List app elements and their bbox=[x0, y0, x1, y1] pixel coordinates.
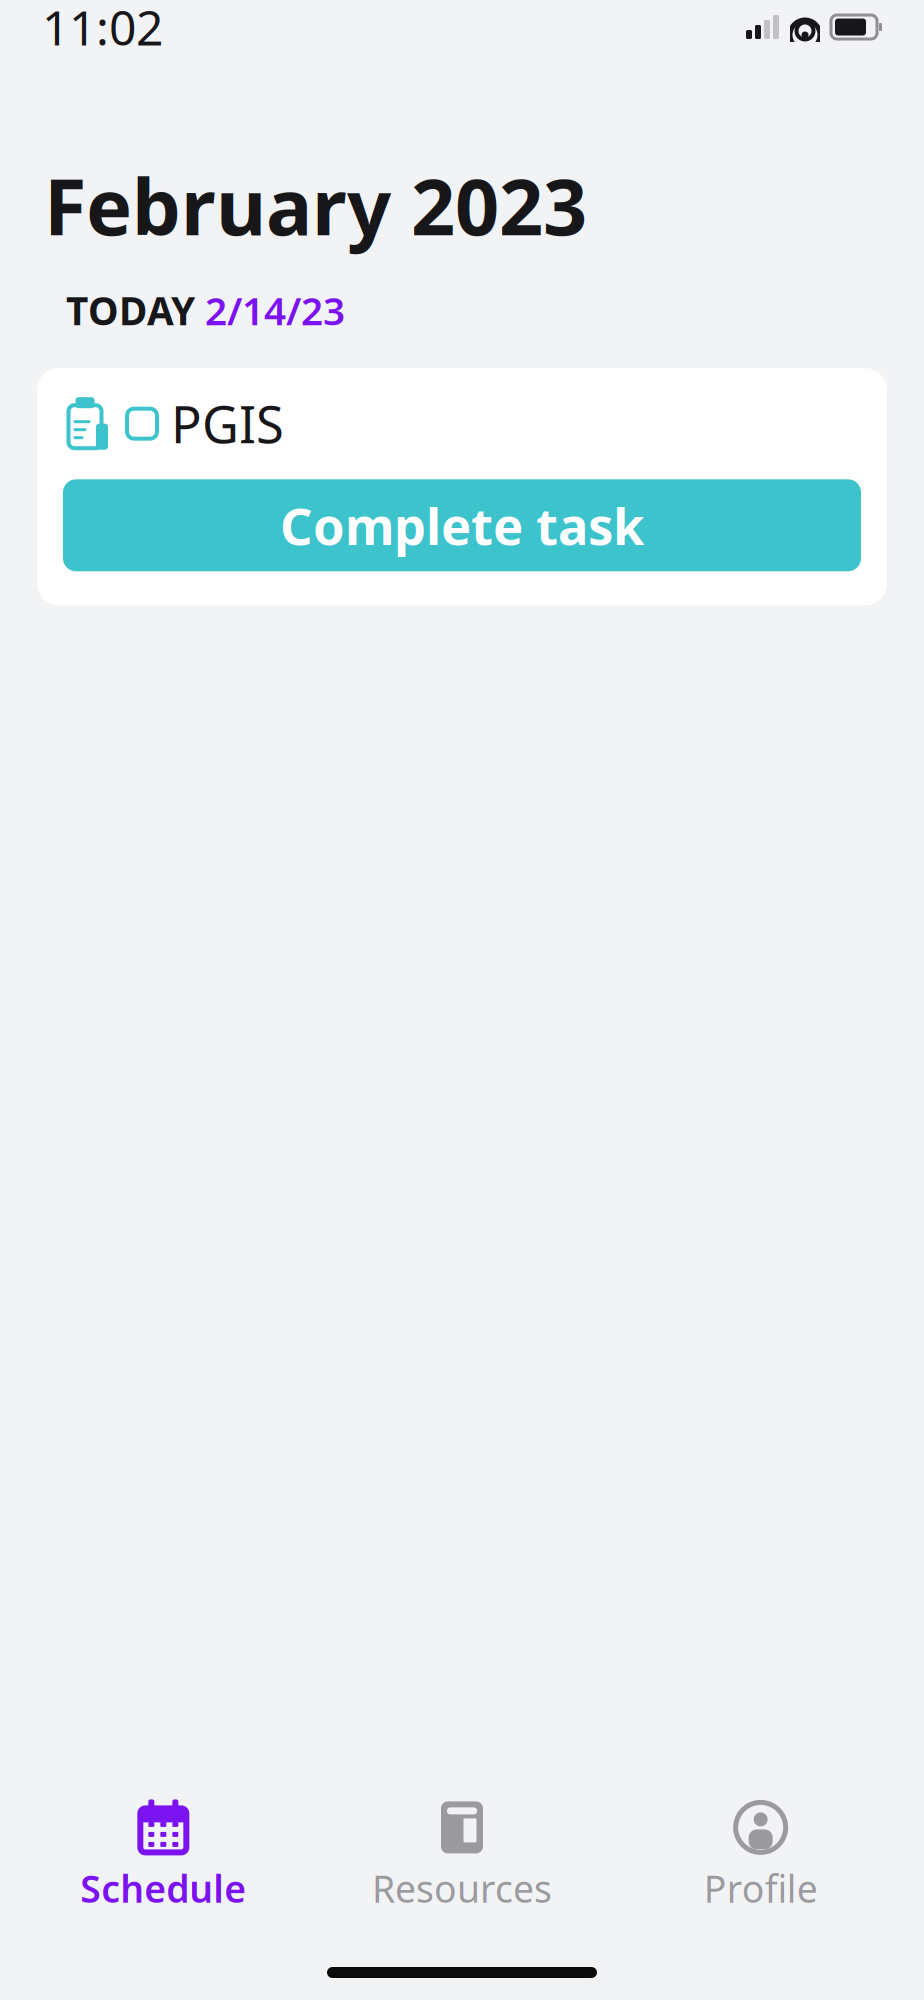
button[interactable]: Schedule bbox=[14, 1793, 313, 1919]
staticText: PGIS bbox=[171, 390, 284, 457]
button[interactable]: Resources bbox=[313, 1793, 611, 1919]
button[interactable]: Complete task bbox=[63, 479, 861, 571]
staticText: Profile bbox=[704, 1863, 818, 1913]
staticText: Complete task bbox=[280, 492, 644, 559]
button[interactable]: Profile bbox=[611, 1793, 910, 1919]
staticText: 2/14/23 bbox=[205, 285, 345, 336]
staticText: 11:02 bbox=[42, 0, 163, 59]
button[interactable]: Toggle PGIS task bbox=[127, 409, 157, 439]
staticText: February 2023 bbox=[44, 154, 587, 257]
staticText: Schedule bbox=[80, 1863, 246, 1913]
staticText: TODAY bbox=[66, 285, 195, 336]
staticText: Resources bbox=[372, 1863, 552, 1913]
